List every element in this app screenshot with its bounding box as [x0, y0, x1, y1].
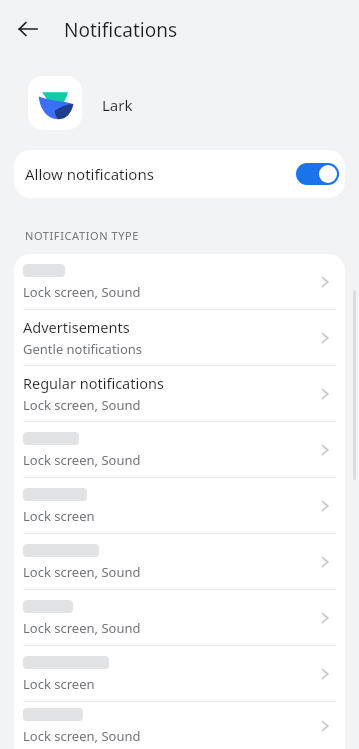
staticText: NOTIFICATION TYPE: [25, 228, 140, 243]
staticText: Lock screen, Sound: [23, 396, 141, 414]
staticText: Lark: [102, 95, 133, 115]
staticText: Advertisements: [23, 317, 130, 337]
button[interactable]: Regular notifications: [14, 366, 345, 421]
staticText: Lock screen: [23, 507, 95, 525]
button[interactable]: Lock screen, Sound: [14, 422, 345, 477]
button[interactable]: Back: [14, 15, 42, 43]
button[interactable]: Lock screen: [14, 478, 345, 533]
staticText: Lock screen, Sound: [23, 563, 141, 581]
button[interactable]: App info: [308, 147, 336, 175]
button[interactable]: Allow notifications: [14, 150, 345, 198]
staticText: Allow notifications: [25, 164, 154, 184]
staticText: Lock screen, Sound: [23, 727, 141, 745]
button[interactable]: Lock screen, Sound: [14, 534, 345, 589]
staticText: Gentle notifications: [23, 340, 143, 358]
button[interactable]: Lock screen, Sound: [14, 254, 345, 309]
button[interactable]: Lock screen, Sound: [14, 590, 345, 645]
staticText: Lock screen: [23, 675, 95, 693]
staticText: Regular notifications: [23, 373, 164, 393]
button[interactable]: Lock screen: [14, 646, 345, 701]
button[interactable]: Lock screen, Sound: [14, 702, 345, 749]
staticText: Notifications: [64, 17, 178, 43]
staticText: Lock screen, Sound: [23, 619, 141, 637]
staticText: Lock screen, Sound: [23, 283, 141, 301]
staticText: Lock screen, Sound: [23, 451, 141, 469]
button[interactable]: Advertisements: [14, 310, 345, 365]
